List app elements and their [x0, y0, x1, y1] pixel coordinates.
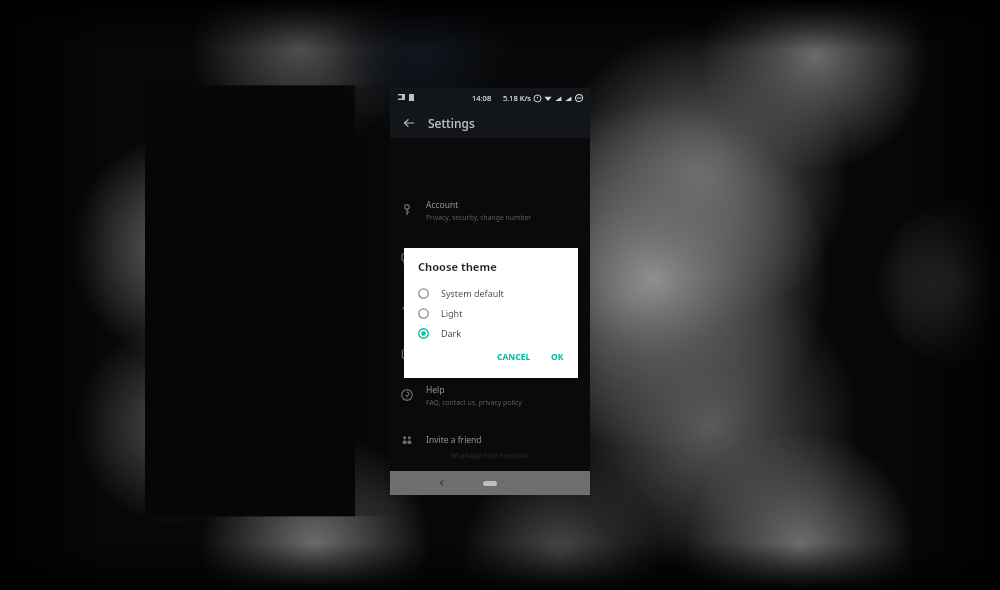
- button[interactable]: OK: [547, 348, 568, 366]
- button[interactable]: Help: [390, 382, 590, 408]
- staticText: Invite a friend: [426, 434, 482, 446]
- staticText: Message, group & call tones: [426, 309, 516, 318]
- button[interactable]: Dark: [404, 323, 578, 343]
- staticText: 5.18 K/s: [503, 93, 531, 103]
- button[interactable]: Chats: [390, 245, 590, 271]
- staticText: Privacy, security, change number: [426, 213, 532, 222]
- staticText: Choose theme: [418, 259, 497, 274]
- button[interactable]: Back: [432, 473, 452, 493]
- staticText: Dark: [441, 327, 462, 339]
- staticText: 14:08: [472, 93, 492, 103]
- staticText: Network usage, auto-download: [426, 357, 527, 366]
- staticText: CANCEL: [497, 351, 531, 363]
- button[interactable]: Account: [390, 197, 590, 223]
- button[interactable]: Back: [396, 110, 422, 136]
- staticText: Help: [426, 384, 445, 396]
- staticText: OK: [551, 351, 564, 363]
- staticText: Theme, wallpapers, chat history: [426, 261, 528, 270]
- staticText: Light: [441, 307, 463, 319]
- staticText: Chats: [426, 247, 449, 259]
- staticText: Account: [426, 199, 459, 211]
- staticText: WhatsApp from Facebook: [390, 451, 590, 460]
- button[interactable]: System default: [404, 283, 578, 303]
- button[interactable]: Storage and data: [390, 341, 590, 367]
- button[interactable]: Light: [404, 303, 578, 323]
- staticText: System default: [441, 287, 504, 299]
- button[interactable]: Home: [477, 476, 503, 490]
- staticText: Notifications: [426, 295, 477, 307]
- button[interactable]: Notifications: [390, 293, 590, 319]
- button[interactable]: CANCEL: [493, 348, 535, 366]
- staticText: FAQ, contact us, privacy policy: [426, 398, 522, 407]
- staticText: Settings: [428, 115, 475, 131]
- button[interactable]: Invite a friend: [390, 429, 590, 451]
